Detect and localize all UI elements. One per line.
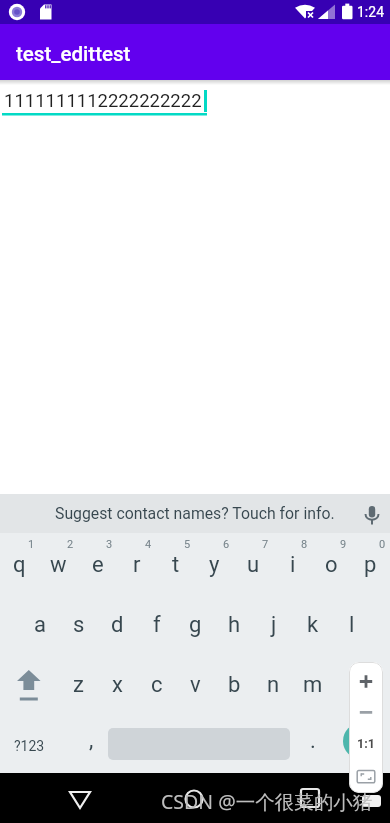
button[interactable]: d xyxy=(98,593,137,653)
staticText: c xyxy=(151,672,163,698)
button[interactable]: 1:1 xyxy=(357,736,375,751)
button[interactable]: x xyxy=(98,653,137,713)
button[interactable]: a xyxy=(20,593,59,653)
button[interactable]: w xyxy=(39,533,78,593)
button[interactable]: r xyxy=(117,533,156,593)
button[interactable]: v xyxy=(176,653,215,713)
staticText: 1:24 xyxy=(357,4,384,20)
staticText: 0 xyxy=(379,538,386,551)
button[interactable] xyxy=(60,778,100,818)
button[interactable]: s xyxy=(59,593,98,653)
staticText: l xyxy=(349,612,355,638)
staticText: , xyxy=(89,727,94,753)
button[interactable]: c xyxy=(137,653,176,713)
staticText: 6 xyxy=(223,538,230,551)
button[interactable]: p xyxy=(351,533,390,593)
button[interactable] xyxy=(289,778,329,818)
button[interactable]: . xyxy=(293,713,332,773)
button[interactable]: o xyxy=(312,533,351,593)
button[interactable]: 1111111112222222222 xyxy=(0,88,209,124)
button[interactable] xyxy=(0,653,58,713)
staticText: ?123 xyxy=(14,738,45,754)
button[interactable]: z xyxy=(59,653,98,713)
staticText: q xyxy=(13,552,26,578)
staticText: v xyxy=(190,672,201,698)
button[interactable]: y xyxy=(195,533,234,593)
staticText: b xyxy=(228,672,241,698)
staticText: o xyxy=(325,552,338,578)
staticText: 2 xyxy=(67,538,74,551)
button[interactable]: j xyxy=(254,593,293,653)
button[interactable] xyxy=(349,762,383,790)
button[interactable]: m xyxy=(293,653,332,713)
staticText: h xyxy=(228,612,241,638)
staticText: 1 xyxy=(28,538,35,551)
staticText: u xyxy=(247,552,260,578)
button[interactable]: n xyxy=(254,653,293,713)
staticText: t xyxy=(172,552,180,578)
button[interactable]: t xyxy=(156,533,195,593)
staticText: 1111111112222222222 xyxy=(4,90,202,112)
button[interactable]: Suggest contact names? Touch for info. xyxy=(0,494,390,533)
staticText: x xyxy=(112,672,123,698)
staticText: 5 xyxy=(184,538,191,551)
button[interactable]: e xyxy=(78,533,117,593)
button[interactable]: g xyxy=(176,593,215,653)
staticText: s xyxy=(73,612,85,638)
staticText: n xyxy=(267,672,280,698)
button[interactable] xyxy=(362,795,381,807)
staticText: a xyxy=(34,612,46,638)
button[interactable] xyxy=(356,497,390,531)
staticText: . xyxy=(310,728,316,754)
button[interactable] xyxy=(349,666,383,696)
staticText: y xyxy=(209,552,220,578)
button[interactable]: k xyxy=(293,593,332,653)
staticText: 4 xyxy=(145,538,152,551)
button[interactable] xyxy=(349,698,383,728)
staticText: e xyxy=(92,552,104,578)
staticText: k xyxy=(307,612,319,638)
staticText: g xyxy=(189,612,202,638)
staticText: CSDN @一个很菜的小猪 xyxy=(161,788,373,815)
staticText: z xyxy=(73,672,84,698)
staticText: r xyxy=(133,552,141,578)
button[interactable]: l xyxy=(332,593,371,653)
button[interactable]: b xyxy=(215,653,254,713)
button[interactable]: q xyxy=(0,533,39,593)
button[interactable]: h xyxy=(215,593,254,653)
button[interactable]: ?123 xyxy=(0,713,58,773)
button[interactable] xyxy=(343,723,379,759)
staticText: m xyxy=(303,672,323,698)
button[interactable]: i xyxy=(273,533,312,593)
button[interactable] xyxy=(174,778,214,818)
button[interactable]: f xyxy=(137,593,176,653)
staticText: j xyxy=(271,612,277,638)
staticText: d xyxy=(111,612,124,638)
staticText: f xyxy=(153,612,161,638)
staticText: 8 xyxy=(301,538,308,551)
staticText: p xyxy=(364,552,377,578)
staticText: 9 xyxy=(340,538,347,551)
staticText: 7 xyxy=(262,538,269,551)
staticText: Suggest contact names? Touch for info. xyxy=(55,504,335,523)
button[interactable]: u xyxy=(234,533,273,593)
button[interactable]: , xyxy=(68,713,107,773)
staticText: 3 xyxy=(106,538,113,551)
staticText: test_edittest xyxy=(16,42,131,66)
staticText: w xyxy=(50,552,67,578)
staticText: i xyxy=(290,552,296,578)
